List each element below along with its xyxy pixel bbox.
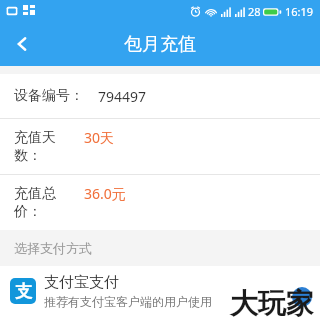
staticText: 28 bbox=[248, 4, 261, 19]
button[interactable]: 充值总 价： bbox=[0, 175, 320, 230]
button[interactable]: 设备编号： bbox=[0, 74, 320, 118]
staticText: 794497 bbox=[98, 87, 147, 106]
staticText: 支 bbox=[15, 281, 32, 302]
button[interactable]: Back bbox=[0, 22, 44, 66]
staticText: 36.0元 bbox=[84, 184, 126, 203]
staticText: 选择支付方式 bbox=[14, 240, 92, 256]
staticText: 设备编号： bbox=[14, 87, 84, 105]
staticText: 大玩家 bbox=[230, 286, 314, 321]
staticText: 支付宝支付 bbox=[44, 273, 119, 292]
staticText: 充值总 价： bbox=[14, 185, 56, 221]
staticText: 充值天 数： bbox=[14, 129, 56, 165]
button[interactable]: 支 bbox=[0, 266, 320, 316]
staticText: 包月充值 bbox=[124, 33, 196, 56]
staticText: 30天 bbox=[84, 128, 115, 147]
staticText: 推荐有支付宝客户端的用户使用 bbox=[44, 294, 212, 309]
staticText: 16:19 bbox=[285, 4, 314, 19]
button[interactable]: 充值天 数： bbox=[0, 119, 320, 174]
